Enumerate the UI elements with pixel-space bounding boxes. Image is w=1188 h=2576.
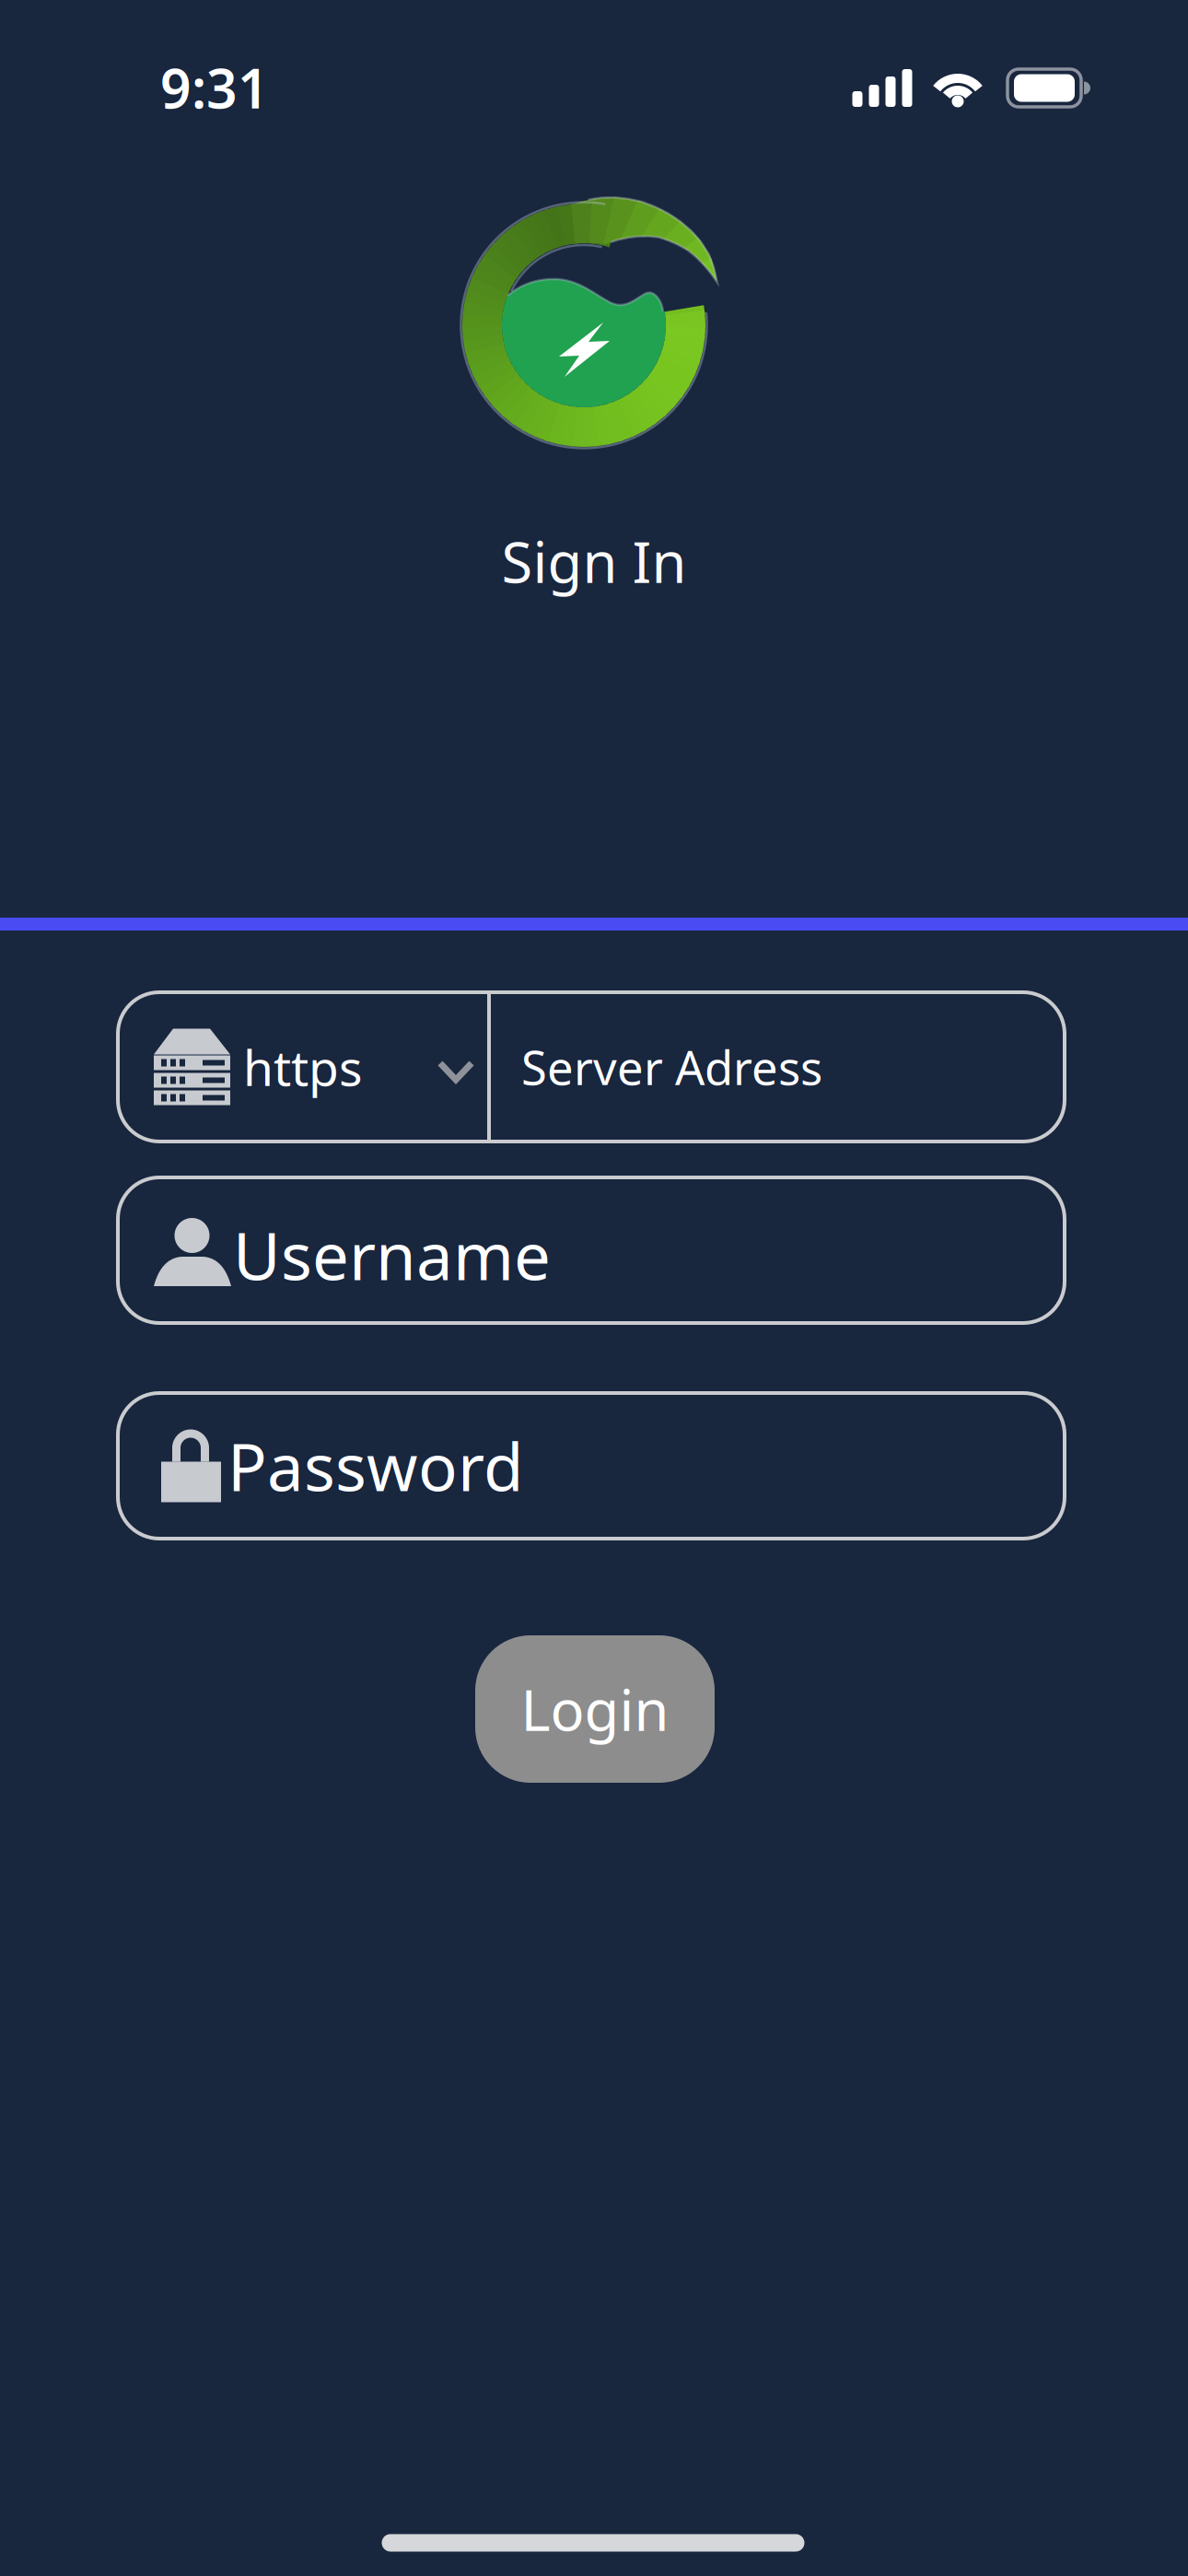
button[interactable]: Login — [475, 1635, 715, 1783]
button[interactable]: https — [118, 992, 1065, 1142]
staticText: Server Adress — [521, 1036, 822, 1098]
staticText: Login — [521, 1672, 669, 1747]
staticText: Username — [233, 1212, 551, 1298]
staticText: 9:31 — [160, 52, 269, 123]
staticText: Sign In — [501, 524, 687, 599]
button[interactable]: Username — [118, 1177, 1065, 1323]
button[interactable]: Password — [118, 1393, 1065, 1539]
staticText: Password — [227, 1423, 523, 1509]
staticText: https — [243, 1034, 363, 1099]
